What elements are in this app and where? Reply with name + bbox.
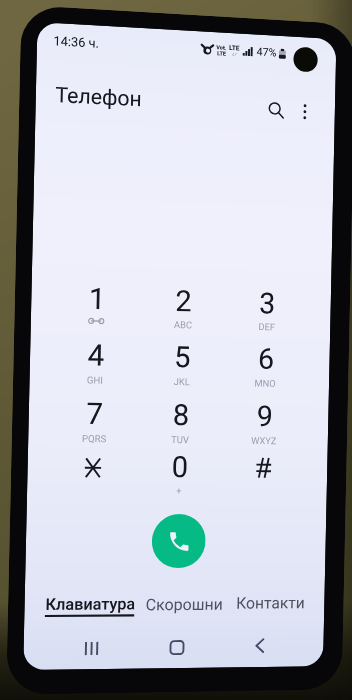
staticText: 5: [173, 340, 191, 374]
staticText: Телефон: [55, 83, 143, 112]
button[interactable]: 6: [224, 336, 307, 392]
staticText: 47%: [256, 45, 277, 59]
button[interactable]: [221, 446, 304, 501]
button[interactable]: Recent apps: [62, 632, 120, 664]
staticText: Клавиатура: [45, 594, 136, 614]
button[interactable]: 1: [53, 275, 140, 333]
button[interactable]: Контакти: [221, 586, 319, 621]
staticText: 47: [232, 52, 238, 57]
button[interactable]: 3: [225, 280, 308, 337]
staticText: 7: [86, 396, 104, 431]
staticText: 1: [88, 281, 106, 316]
button[interactable]: 7: [51, 391, 137, 448]
button[interactable]: 5: [139, 334, 224, 391]
button[interactable]: 8: [138, 392, 223, 448]
staticText: PQRS: [81, 433, 107, 444]
button[interactable]: 2: [140, 278, 225, 335]
staticText: GHI: [87, 374, 103, 386]
staticText: Скорошни: [145, 595, 223, 614]
staticText: LTE: [229, 44, 240, 52]
staticText: 4: [87, 338, 105, 373]
button[interactable]: Back: [232, 629, 287, 661]
button[interactable]: 9: [222, 394, 306, 449]
staticText: JKL: [173, 376, 190, 387]
staticText: 14:36 ч.: [53, 33, 99, 51]
staticText: Контакти: [236, 593, 305, 613]
button[interactable]: [49, 444, 136, 500]
staticText: 0: [171, 450, 189, 484]
staticText: ABC: [173, 319, 192, 330]
staticText: +: [176, 485, 182, 496]
staticText: LTE: [217, 50, 226, 57]
staticText: WXYZ: [251, 435, 277, 446]
staticText: 9: [256, 399, 273, 433]
staticText: TUV: [171, 434, 189, 445]
staticText: VoⱢ: [216, 43, 226, 51]
staticText: MNO: [254, 377, 276, 389]
staticText: 3: [259, 286, 276, 320]
button[interactable]: Скорошни: [134, 588, 234, 622]
button[interactable]: 4: [52, 332, 138, 389]
button[interactable]: Search: [258, 91, 294, 128]
staticText: 2: [175, 284, 192, 318]
staticText: 8: [172, 398, 190, 432]
button[interactable]: More options: [287, 93, 323, 130]
staticText: 6: [257, 342, 275, 376]
button[interactable]: Home: [148, 631, 205, 663]
button[interactable]: Клавиатура: [39, 587, 141, 622]
button[interactable]: Call: [151, 514, 206, 568]
staticText: DEF: [258, 321, 275, 332]
button[interactable]: 0: [137, 445, 221, 500]
